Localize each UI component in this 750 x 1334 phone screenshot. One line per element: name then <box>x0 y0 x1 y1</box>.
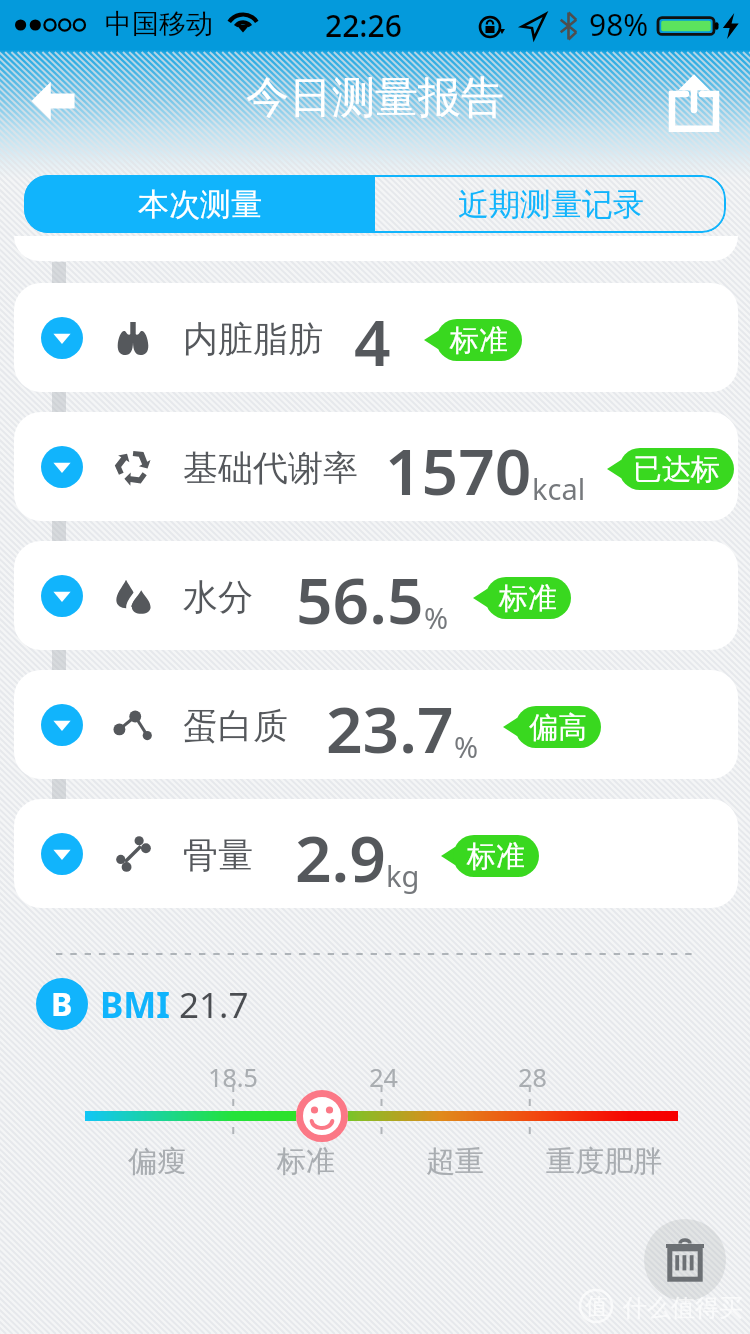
staticText: 内脏脂肪 <box>183 317 323 361</box>
staticText: 今日测量报告 <box>246 71 504 125</box>
staticText: 标准 <box>277 1143 335 1180</box>
staticText: 18.5 <box>208 1060 258 1094</box>
staticText: 近期测量记录 <box>458 185 644 224</box>
button[interactable]: Back <box>20 68 86 134</box>
staticText: 偏高 <box>529 709 587 746</box>
staticText: 水分 <box>183 575 253 619</box>
staticText: 基础代谢率 <box>183 446 358 490</box>
staticText: 56.5 <box>296 556 424 643</box>
staticText: 21.7 <box>179 981 249 1029</box>
staticText: 标准 <box>499 580 557 617</box>
staticText: 98% <box>589 4 649 45</box>
staticText: % <box>424 598 449 637</box>
staticText: 蛋白质 <box>183 704 288 748</box>
staticText: 偏瘦 <box>128 1143 186 1180</box>
button[interactable]: 本次测量 <box>24 175 375 233</box>
staticText: 重度肥胖 <box>546 1143 662 1180</box>
button[interactable]: 近期测量记录 <box>375 175 726 233</box>
staticText: 22:26 <box>325 5 402 46</box>
staticText: % <box>454 727 479 766</box>
staticText: 标准 <box>450 322 508 359</box>
staticText: 什么值得买 <box>623 1293 743 1323</box>
button[interactable]: 内脏脂肪 <box>14 283 738 392</box>
button[interactable]: 蛋白质 <box>14 670 738 779</box>
staticText: kg <box>386 856 420 895</box>
button[interactable]: 水分 <box>14 541 738 650</box>
staticText: 24 <box>369 1060 398 1094</box>
staticText: 23.7 <box>326 685 454 772</box>
staticText: 已达标 <box>633 451 720 488</box>
staticText: 中国移动 <box>105 7 213 41</box>
button[interactable]: 基础代谢率 <box>14 412 738 521</box>
staticText: 本次测量 <box>138 185 262 224</box>
staticText: 标准 <box>467 838 525 875</box>
button[interactable]: 骨量 <box>14 799 738 908</box>
button[interactable]: Delete <box>644 1219 726 1301</box>
button[interactable]: Share <box>656 64 732 140</box>
staticText: 2.9 <box>295 814 386 901</box>
staticText: 值 <box>585 1292 608 1321</box>
staticText: 1570 <box>385 427 532 514</box>
staticText: 骨量 <box>183 833 253 877</box>
staticText: BMI <box>100 981 170 1029</box>
staticText: 28 <box>518 1060 547 1094</box>
staticText: kcal <box>532 469 586 508</box>
staticText: B <box>51 982 73 1026</box>
staticText: 超重 <box>426 1143 484 1180</box>
staticText: 4 <box>354 298 391 385</box>
